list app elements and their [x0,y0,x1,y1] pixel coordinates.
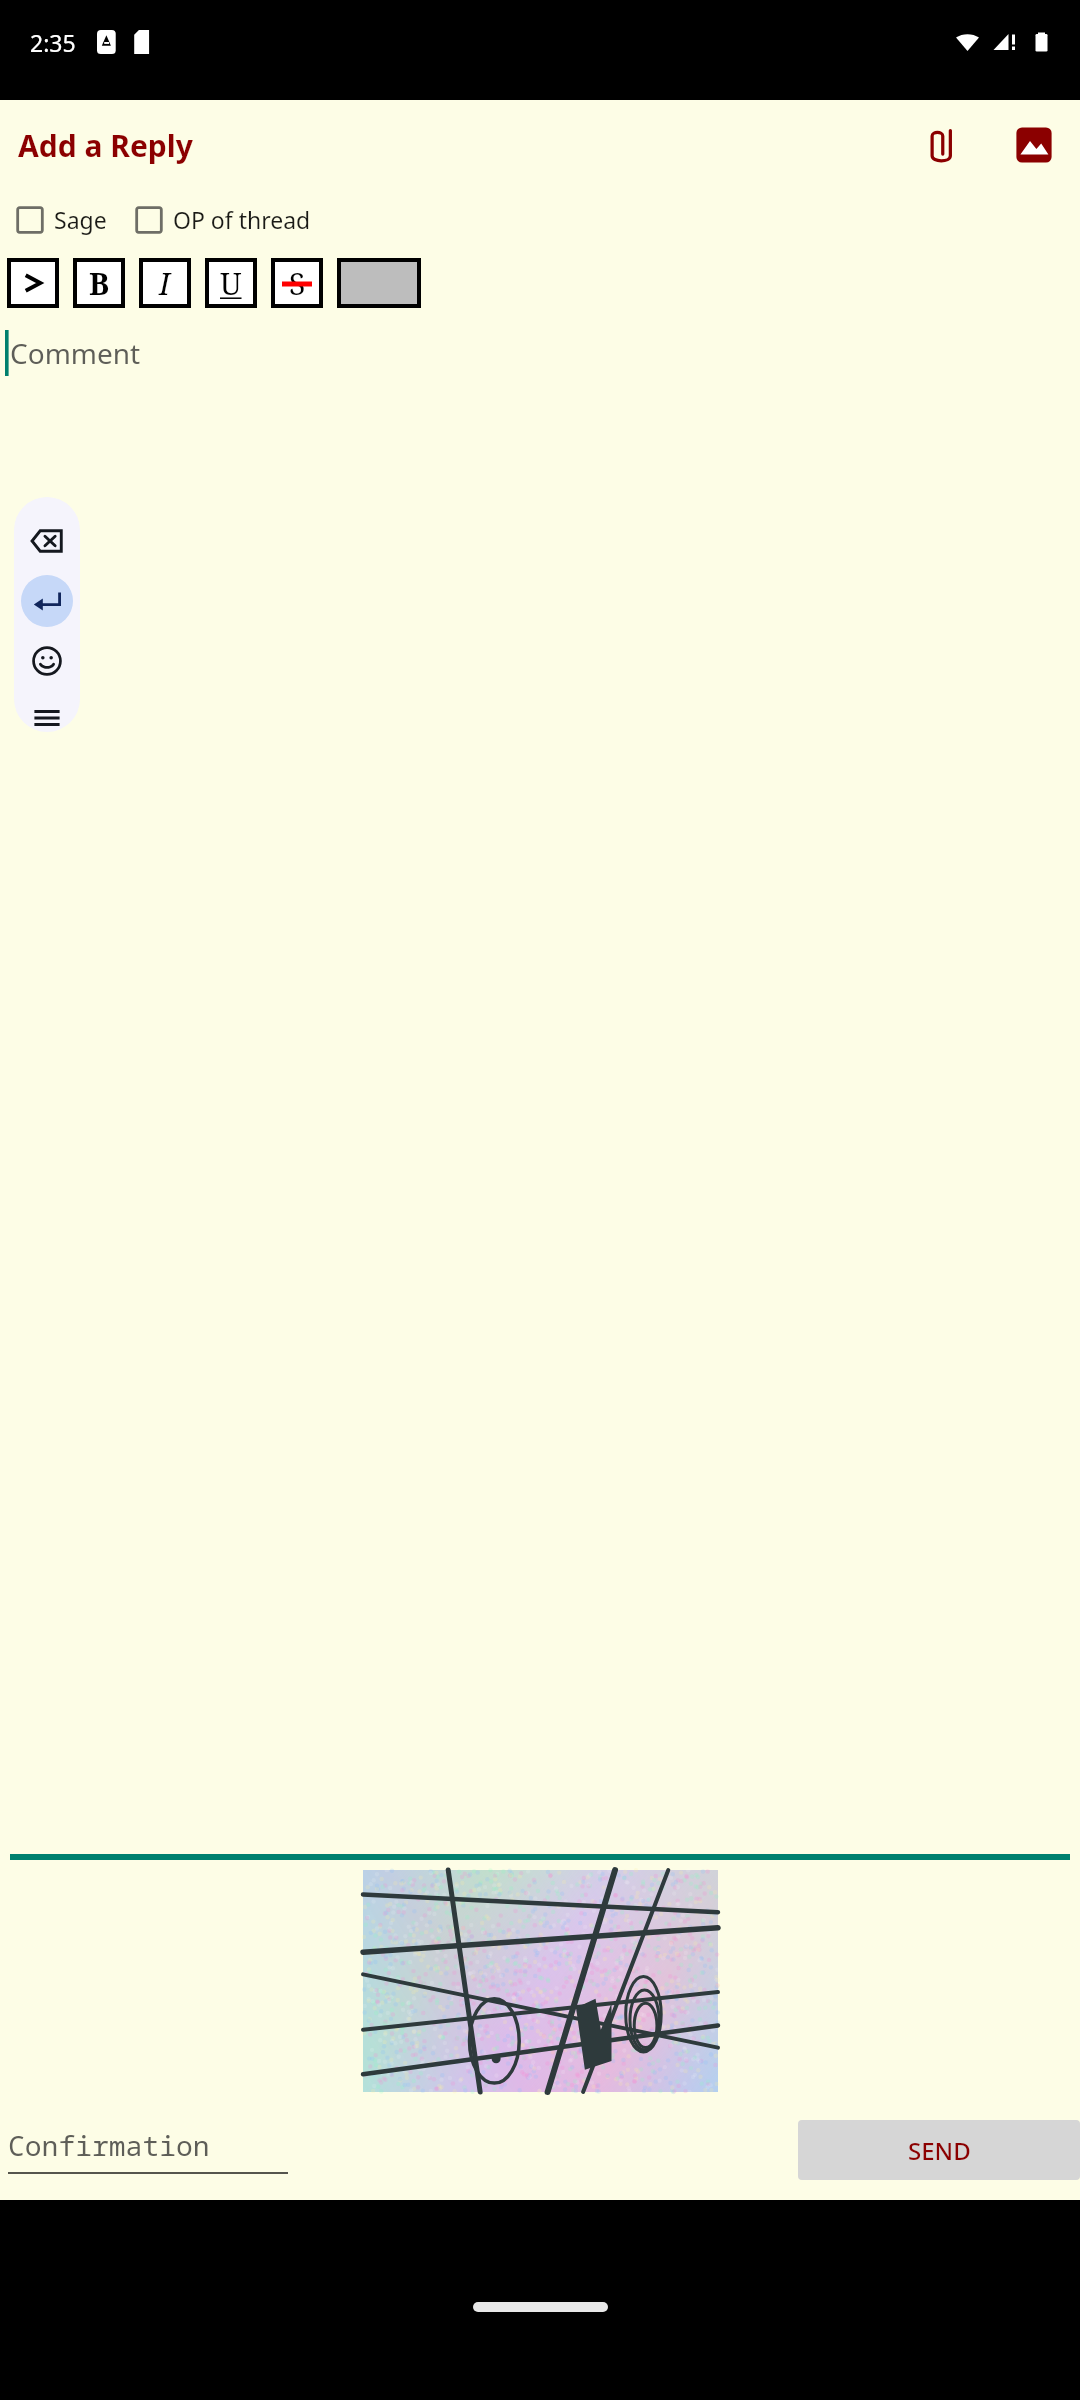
button[interactable]: Attach file [906,109,978,181]
staticText: I [159,263,171,304]
button[interactable]: Emoji [19,633,75,689]
button[interactable]: Enter [21,575,73,627]
staticText: Comment [10,334,141,372]
button[interactable]: Insert image [998,109,1070,181]
button[interactable]: I [143,262,187,304]
button[interactable] [11,262,55,304]
staticText: Sage [54,204,107,235]
button[interactable]: U [209,262,253,304]
staticText: Add a Reply [18,125,193,166]
button[interactable]: B [77,262,121,304]
button[interactable]: Confirmation [8,2126,288,2174]
staticText: 2:35 [30,27,76,58]
button[interactable]: Comment [0,318,1080,388]
button[interactable]: Backspace [19,513,75,569]
button[interactable]: OP of thread [131,204,315,235]
staticText: S [289,263,306,304]
button[interactable]: S [275,262,319,304]
button[interactable]: SEND [798,2120,1080,2180]
button[interactable]: Keyboard menu [19,703,75,732]
button[interactable]: Sage [12,204,111,235]
staticText: SEND [908,2134,971,2167]
staticText: U [220,263,242,304]
staticText: B [89,263,110,304]
staticText: Confirmation [8,2126,210,2164]
button[interactable]: Attached image preview [363,1870,718,2092]
staticText: OP of thread [173,204,311,235]
